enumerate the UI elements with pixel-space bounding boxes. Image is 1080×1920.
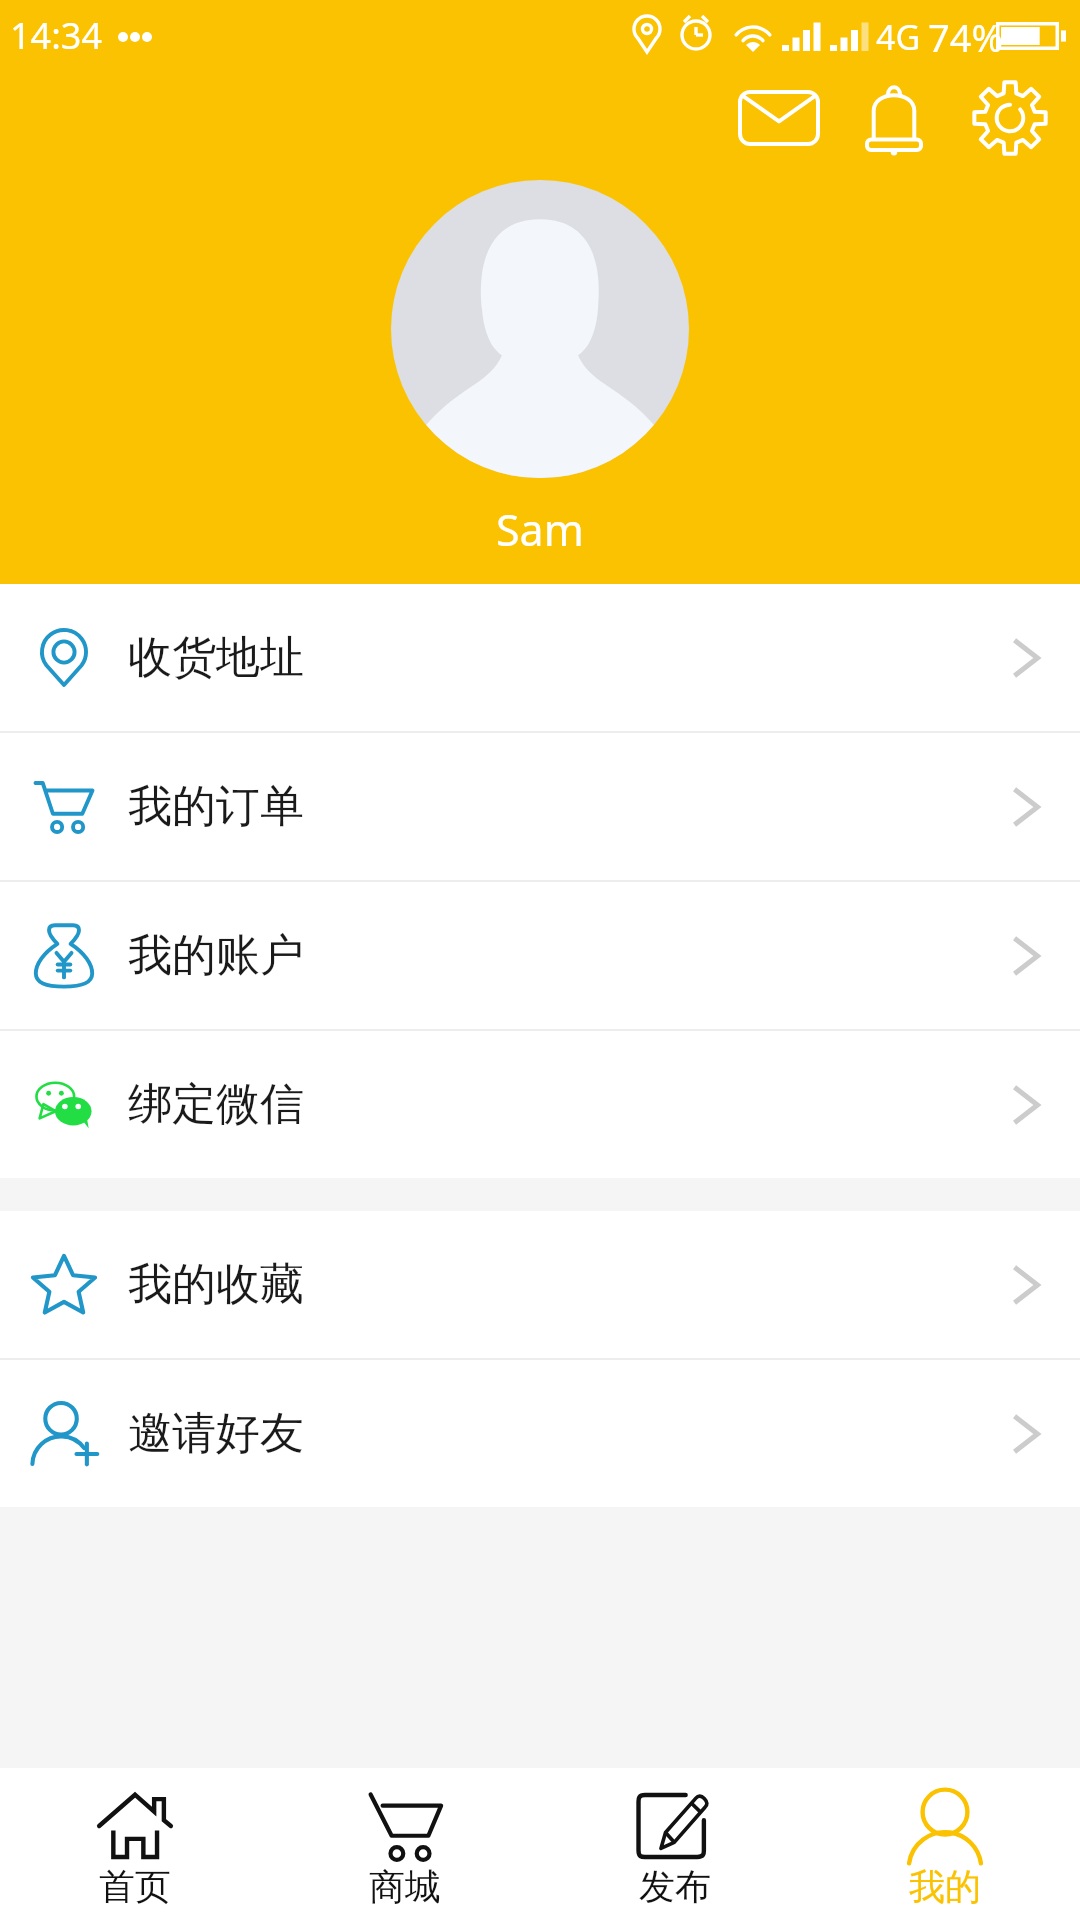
button[interactable]: 我的账户: [0, 882, 1080, 1029]
button[interactable]: 邀请好友: [0, 1360, 1080, 1507]
button[interactable]: 收货地址: [0, 584, 1080, 731]
button[interactable]: 绑定微信: [0, 1031, 1080, 1178]
staticText: 我的: [909, 1864, 981, 1909]
button[interactable]: Notifications: [846, 68, 942, 168]
button[interactable]: Profile photo: [391, 180, 689, 478]
staticText: Sam: [496, 500, 584, 559]
staticText: 74%: [928, 11, 1004, 63]
staticText: 我的收藏: [128, 1257, 304, 1312]
staticText: 14:34: [10, 11, 103, 60]
staticText: 4G: [876, 14, 921, 60]
button[interactable]: 我的: [810, 1768, 1080, 1920]
button[interactable]: Messages: [714, 70, 844, 166]
staticText: 邀请好友: [128, 1406, 304, 1461]
staticText: 发布: [639, 1864, 711, 1909]
staticText: 绑定微信: [128, 1077, 304, 1132]
staticText: 我的账户: [128, 928, 304, 983]
staticText: 商城: [369, 1864, 441, 1909]
button[interactable]: 我的收藏: [0, 1211, 1080, 1358]
staticText: 首页: [99, 1864, 171, 1909]
staticText: 收货地址: [128, 630, 304, 685]
button[interactable]: 我的订单: [0, 733, 1080, 880]
button[interactable]: 首页: [0, 1768, 270, 1920]
button[interactable]: Settings: [962, 68, 1058, 168]
button[interactable]: 发布: [540, 1768, 810, 1920]
staticText: 我的订单: [128, 779, 304, 834]
button[interactable]: 商城: [270, 1768, 540, 1920]
